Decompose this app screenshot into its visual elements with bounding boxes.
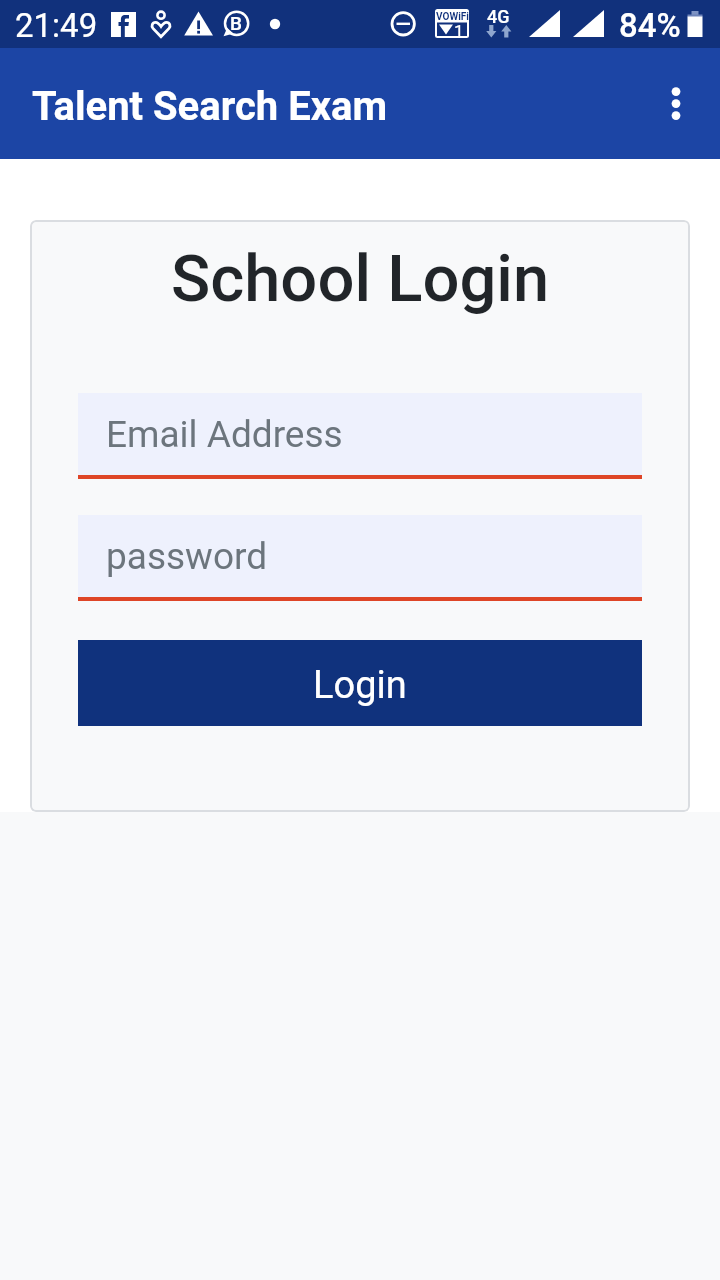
staticText: VOWiFi	[436, 11, 469, 23]
button[interactable]: More options	[624, 48, 720, 159]
button[interactable]: Login	[78, 640, 642, 726]
staticText: 1	[454, 21, 464, 41]
staticText: B	[230, 12, 242, 34]
staticText: 84%	[619, 6, 681, 45]
staticText: 4G	[487, 6, 510, 27]
button[interactable]: password	[78, 515, 642, 601]
staticText: School Login	[30, 241, 690, 317]
button[interactable]: Email Address	[78, 393, 642, 479]
staticText: Email Address	[106, 413, 343, 456]
staticText: 21:49	[15, 6, 98, 45]
staticText: Talent Search Exam	[32, 83, 388, 130]
staticText: Login	[313, 663, 407, 708]
staticText: password	[106, 535, 268, 578]
